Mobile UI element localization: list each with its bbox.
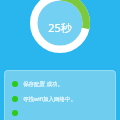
button[interactable]	[12, 110, 110, 116]
button[interactable]: Countdown timer 25 seconds	[30, 0, 90, 53]
button[interactable]: 保存配置 成功。	[12, 80, 110, 88]
staticText: 寻找wifi加入网络中。	[23, 95, 77, 103]
button[interactable]: 寻找wifi加入网络中。	[12, 95, 110, 103]
staticText: 25秒	[48, 20, 72, 35]
staticText: 保存配置 成功。	[23, 80, 63, 88]
